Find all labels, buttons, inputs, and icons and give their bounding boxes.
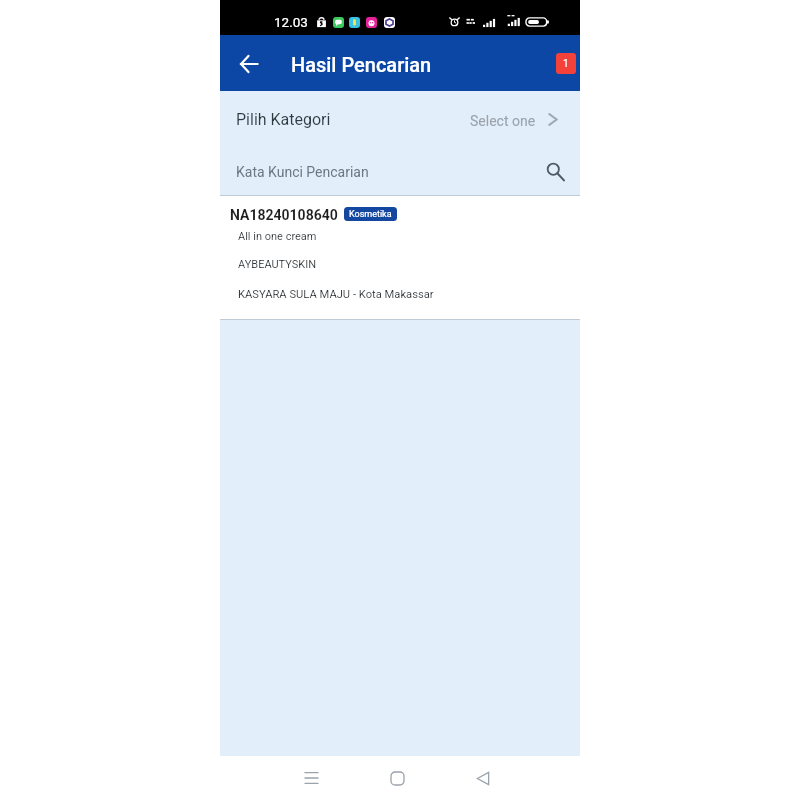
staticText: All in one cream	[238, 230, 317, 243]
button[interactable]: Pilih Kategori	[220, 91, 580, 143]
button[interactable]: Back	[463, 758, 503, 798]
button[interactable]: Notifications	[556, 53, 576, 74]
staticText: 1	[563, 58, 569, 70]
staticText: NA18240108640	[230, 207, 338, 223]
staticText: Hasil Pencarian	[291, 53, 432, 76]
button[interactable]: Recent apps	[291, 758, 331, 798]
staticText: Kata Kunci Pencarian	[236, 164, 369, 180]
button[interactable]: NA18240108640	[220, 196, 580, 319]
staticText: KASYARA SULA MAJU - Kota Makassar	[238, 288, 434, 301]
other: Search	[546, 161, 565, 180]
staticText: Select one	[470, 113, 536, 129]
staticText: Pilih Kategori	[236, 110, 331, 129]
staticText: 12.03	[274, 14, 308, 30]
button[interactable]: Back	[227, 42, 271, 86]
staticText: AYBEAUTYSKIN	[238, 258, 317, 271]
button[interactable]: Home	[377, 758, 417, 798]
button[interactable]: Kata Kunci Pencarian	[220, 143, 580, 195]
staticText: Kosmetika	[349, 209, 392, 220]
